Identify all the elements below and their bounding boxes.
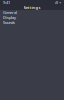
button[interactable]: General (0, 10, 64, 15)
staticText: ıll ⌁ (55, 0, 61, 5)
staticText: General (3, 10, 17, 15)
staticText: 9:41 (3, 0, 10, 5)
button[interactable]: Sounds (0, 20, 64, 25)
button[interactable]: Display (0, 15, 64, 20)
staticText: Display (3, 15, 16, 20)
staticText: Sounds (3, 20, 15, 25)
staticText: Settings (23, 5, 40, 10)
